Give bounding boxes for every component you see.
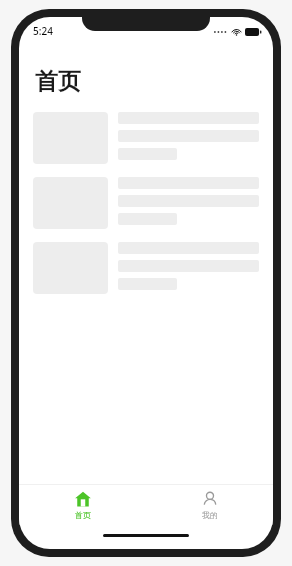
staticText: 首页 [35,67,81,96]
staticText: 我的 [202,510,218,520]
staticText: 首页 [75,510,91,520]
staticText: 5:24 [33,24,53,38]
button[interactable]: 首页 [19,485,146,525]
button[interactable]: 我的 [146,485,273,525]
